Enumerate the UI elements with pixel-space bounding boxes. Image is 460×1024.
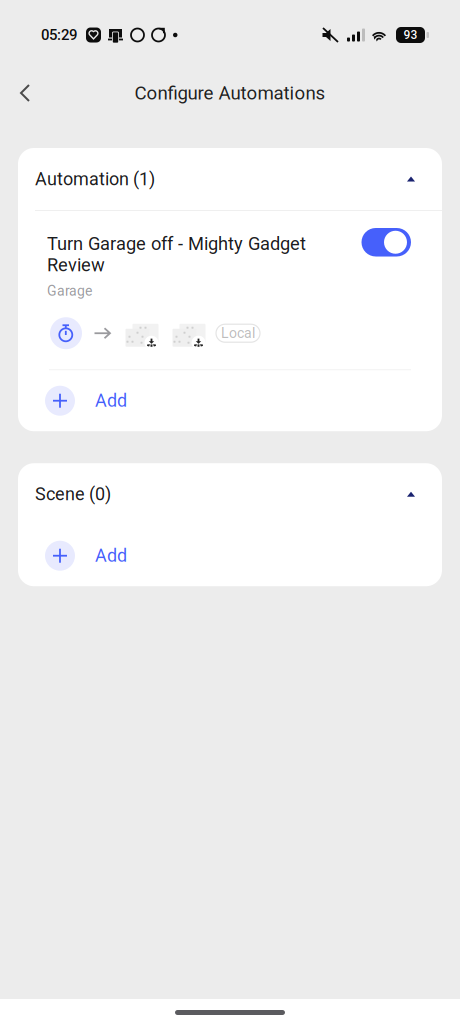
button[interactable]: Back: [3, 71, 47, 115]
staticText: Configure Automations: [134, 82, 325, 104]
staticText: Add: [95, 545, 127, 566]
staticText: Scene (0): [35, 484, 111, 505]
button[interactable]: Add: [18, 525, 442, 586]
staticText: Turn Garage off - Mighty Gadget Review: [47, 233, 306, 276]
staticText: Automation (1): [35, 168, 155, 190]
staticText: 93: [403, 28, 417, 42]
staticText: Local: [221, 325, 255, 341]
staticText: 05:29: [41, 26, 77, 44]
button[interactable]: Toggle automation: [361, 233, 411, 261]
button[interactable]: Automation (1): [18, 148, 442, 210]
button[interactable]: Add: [18, 370, 442, 431]
button[interactable]: Scene (0): [18, 463, 442, 525]
staticText: Add: [95, 390, 127, 411]
staticText: Garage: [47, 283, 92, 299]
